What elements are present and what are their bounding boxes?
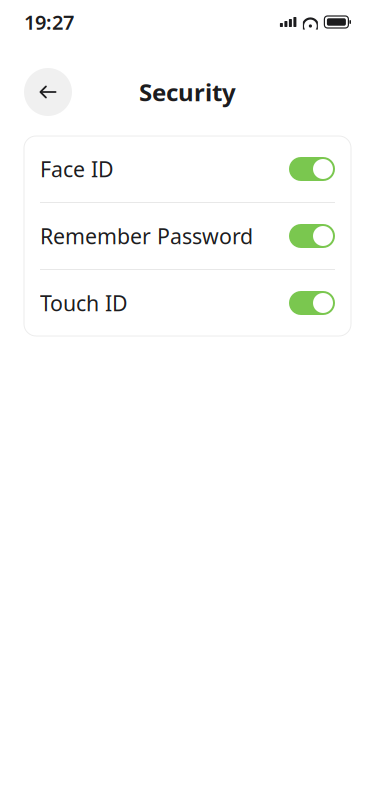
staticText: 19:27 — [24, 9, 74, 35]
button[interactable]: Back — [24, 68, 72, 116]
button[interactable]: Touch ID — [24, 270, 351, 336]
staticText: Face ID — [40, 155, 114, 183]
button[interactable]: Face ID — [24, 136, 351, 202]
button[interactable]: Remember Password — [24, 203, 351, 269]
staticText: Touch ID — [40, 289, 128, 317]
staticText: Remember Password — [40, 222, 253, 250]
staticText: Security — [139, 76, 236, 108]
